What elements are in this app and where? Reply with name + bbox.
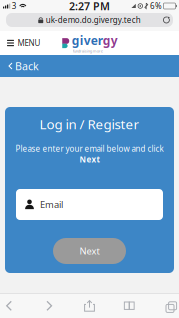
- staticText: Log in / Register: [39, 115, 139, 133]
- staticText: uk-demo.do.givergy.tech: [46, 15, 141, 25]
- staticText: 3: [12, 1, 17, 11]
- staticText: giver: [72, 32, 103, 48]
- button[interactable]: Reload: [163, 16, 173, 24]
- staticText: Next: [79, 154, 99, 165]
- button[interactable]: Share: [78, 294, 100, 318]
- button[interactable]: Back: [0, 55, 179, 77]
- staticText: Back: [15, 59, 39, 73]
- button[interactable]: Next: [53, 238, 126, 264]
- staticText: Please enter your email below and click: [15, 143, 163, 154]
- button[interactable]: Back: [0, 294, 20, 318]
- staticText: Email: [40, 198, 63, 211]
- staticText: 2:27 PM: [69, 0, 110, 13]
- button[interactable]: MENU: [0, 31, 40, 55]
- staticText: 6%: [150, 1, 162, 11]
- staticText: Next: [79, 245, 99, 257]
- staticText: gy: [103, 32, 118, 48]
- button[interactable]: Tabs: [159, 294, 179, 318]
- staticText: fundraising more: [73, 48, 103, 54]
- staticText: MENU: [17, 38, 40, 48]
- button[interactable]: Forward: [38, 294, 60, 318]
- button[interactable]: Bookmarks: [119, 294, 141, 318]
